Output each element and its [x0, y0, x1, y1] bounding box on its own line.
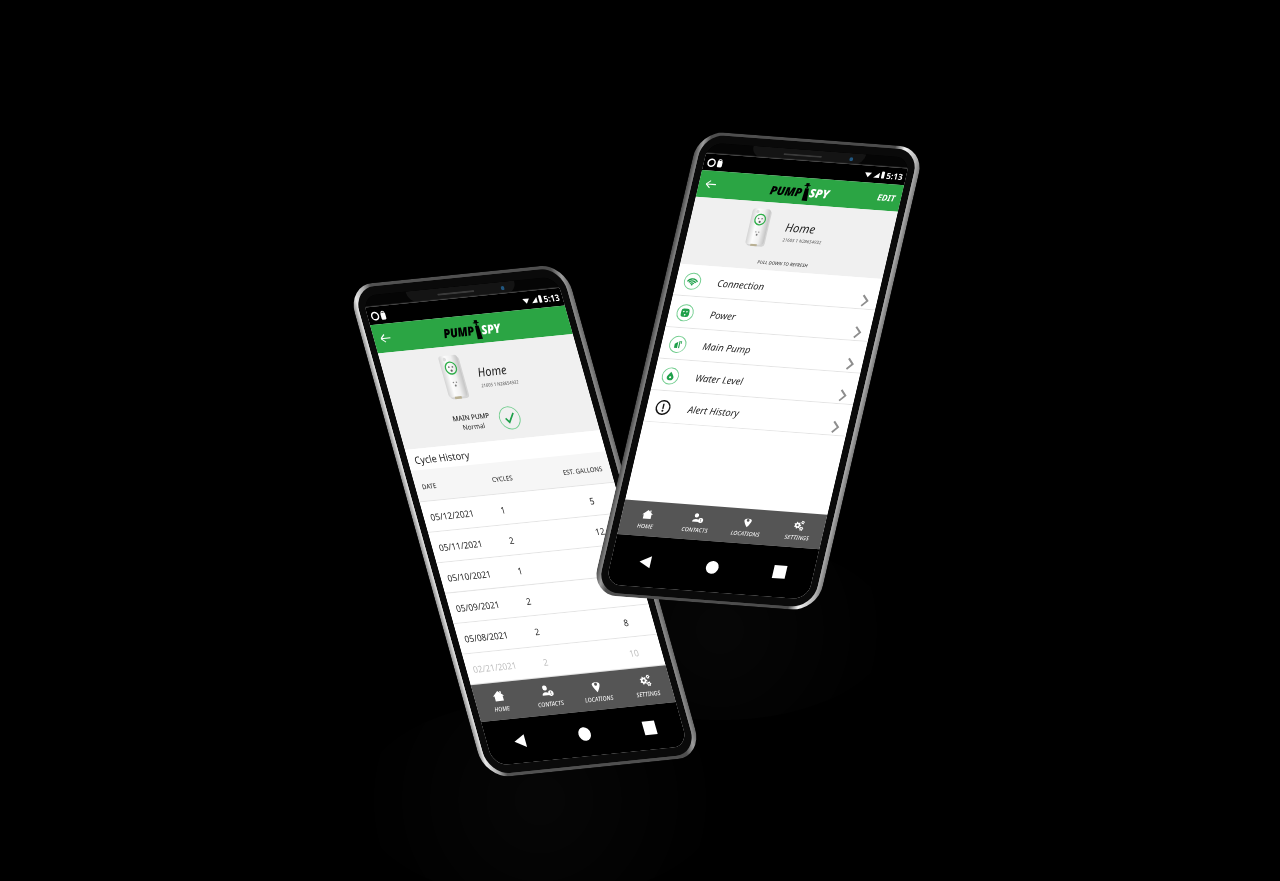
staticText: Cycle History	[413, 448, 471, 467]
staticText: 10	[628, 647, 641, 660]
staticText: HOME	[493, 704, 511, 714]
button[interactable]: CONTACTS	[519, 675, 577, 717]
button[interactable]: 05/08/2021	[454, 604, 657, 655]
button[interactable]: Back	[378, 331, 394, 346]
staticText: 05/11/2021	[437, 537, 484, 554]
staticText: SETTINGS	[635, 689, 662, 699]
button[interactable]: 05/12/2021	[419, 483, 623, 533]
button[interactable]: EDIT	[875, 190, 899, 206]
staticText: EDIT	[876, 191, 897, 204]
staticText: 05/09/2021	[454, 598, 501, 615]
button[interactable]: Recent apps	[611, 702, 688, 753]
staticText: 1	[516, 565, 524, 578]
staticText: 2	[524, 595, 533, 608]
staticText: Normal	[461, 420, 487, 432]
staticText: 5	[605, 555, 613, 569]
staticText: 05/08/2021	[463, 629, 510, 646]
staticText: 2	[533, 625, 541, 639]
staticText: CYCLES	[491, 473, 514, 483]
staticText: CONTACTS	[680, 525, 709, 535]
staticText: CONTACTS	[536, 698, 565, 709]
button[interactable]: LOCATIONS	[717, 507, 776, 545]
button[interactable]: 02/21/2021	[462, 635, 666, 685]
staticText: Main Pump	[701, 340, 752, 356]
button[interactable]: HOME	[471, 680, 529, 722]
staticText: LOCATIONS	[729, 529, 761, 539]
staticText: Home	[475, 361, 509, 381]
staticText: SPY	[479, 319, 502, 338]
staticText: MAIN PUMP	[451, 410, 491, 424]
staticText: DATE	[421, 480, 437, 490]
button[interactable]: Home	[672, 539, 752, 594]
button[interactable]: Recent apps	[740, 544, 819, 600]
staticText: 5:13	[542, 291, 561, 304]
button[interactable]: Back	[481, 715, 558, 766]
button[interactable]: Home	[545, 709, 623, 759]
staticText: 02/21/2021	[471, 659, 518, 676]
staticText: 12	[593, 525, 606, 538]
button[interactable]: Connection	[673, 264, 882, 310]
staticText: PUMP	[441, 321, 477, 341]
staticText: 1	[499, 504, 507, 517]
staticText: 2	[507, 534, 516, 547]
staticText: SETTINGS	[783, 533, 810, 542]
staticText: 5:13	[885, 170, 904, 182]
button[interactable]: Home	[378, 334, 600, 450]
staticText: 05/12/2021	[429, 507, 476, 524]
button[interactable]: Home	[680, 197, 898, 279]
staticText: Alert History	[687, 403, 741, 420]
button[interactable]: CONTACTS	[667, 503, 725, 542]
staticText: EST. GALLONS	[562, 464, 604, 476]
button[interactable]: HOME	[617, 500, 675, 538]
staticText: LOCATIONS	[584, 693, 615, 705]
staticText: 5	[588, 495, 596, 508]
staticText: Connection	[716, 277, 766, 293]
button[interactable]: 05/09/2021	[445, 574, 649, 624]
staticText: SPY	[808, 184, 831, 202]
staticText: Power	[709, 308, 737, 323]
staticText: 21605 1 N28654932	[480, 378, 520, 388]
button[interactable]: 05/11/2021	[428, 513, 632, 563]
staticText: Water Level	[694, 371, 745, 388]
button[interactable]: Back	[605, 534, 684, 589]
staticText: 2	[541, 656, 550, 669]
button[interactable]: SETTINGS	[768, 511, 827, 549]
staticText: HOME	[636, 522, 654, 531]
button[interactable]: Power	[665, 295, 875, 342]
button[interactable]: Back	[703, 177, 719, 191]
button[interactable]: LOCATIONS	[567, 670, 627, 712]
staticText: 10	[611, 586, 624, 599]
staticText: Home	[784, 220, 818, 238]
button[interactable]: Water Level	[651, 358, 860, 405]
button[interactable]: Main Pump	[658, 327, 868, 374]
staticText: 8	[622, 616, 630, 629]
staticText: 21605 1 N28654932	[782, 236, 823, 245]
staticText: PULL DOWN TO REFRESH	[757, 259, 809, 268]
button[interactable]: Alert History	[643, 390, 853, 437]
button[interactable]: SETTINGS	[616, 665, 676, 707]
button[interactable]: 05/10/2021	[437, 544, 640, 594]
staticText: PUMP	[768, 181, 805, 199]
staticText: 05/10/2021	[446, 568, 493, 585]
